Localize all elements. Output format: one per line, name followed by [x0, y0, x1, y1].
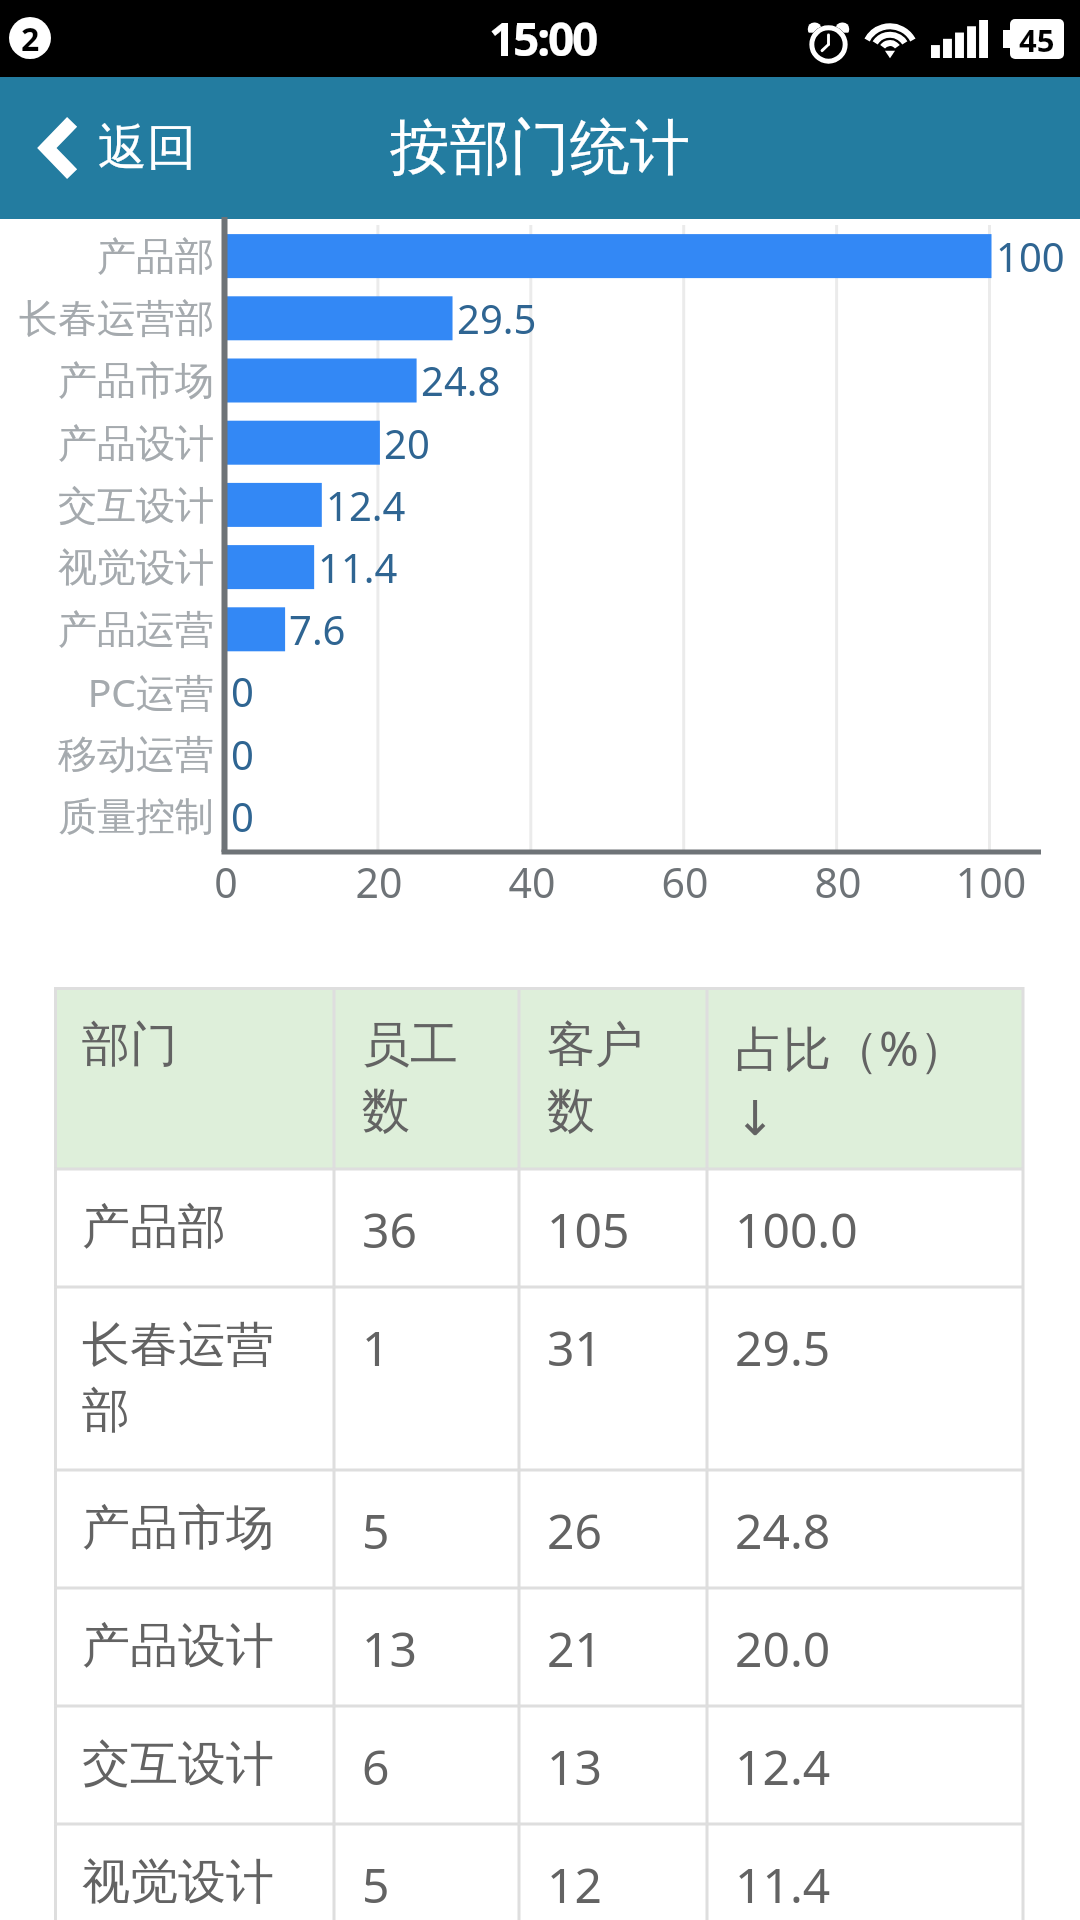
- button[interactable]: 长春运营 部: [54, 1287, 1023, 1470]
- staticText: 质量控制: [0, 792, 214, 841]
- staticText: 产品市场: [0, 356, 214, 405]
- staticText: 15:00: [489, 7, 597, 70]
- staticText: 交互设计: [82, 1734, 274, 1794]
- staticText: 长春运营 部: [82, 1315, 274, 1441]
- staticText: 1: [362, 1315, 390, 1380]
- staticText: 36: [362, 1197, 417, 1262]
- staticText: 11.4: [318, 540, 398, 594]
- button[interactable]: 交互设计: [54, 1706, 1023, 1824]
- staticText: 视觉设计: [0, 543, 214, 592]
- staticText: 45: [1019, 19, 1055, 59]
- button[interactable]: 部门: [54, 987, 334, 1169]
- button[interactable]: 产品部: [54, 1169, 1023, 1287]
- staticText: 产品运营: [0, 605, 214, 654]
- staticText: 5: [362, 1852, 390, 1917]
- staticText: 24.8: [735, 1498, 831, 1563]
- staticText: 0: [231, 664, 254, 718]
- staticText: PC运营: [0, 665, 214, 718]
- staticText: 产品设计: [82, 1616, 274, 1676]
- staticText: 返回: [98, 117, 196, 179]
- staticText: 29.5: [457, 291, 537, 345]
- staticText: 2: [21, 17, 40, 59]
- staticText: 29.5: [735, 1315, 831, 1380]
- staticText: 13: [362, 1616, 417, 1681]
- staticText: 长春运营部: [0, 294, 214, 343]
- staticText: 11.4: [735, 1852, 831, 1917]
- staticText: 移动运营: [0, 730, 214, 779]
- staticText: 100: [941, 854, 1041, 910]
- staticText: 产品市场: [82, 1498, 274, 1558]
- staticText: 视觉设计: [82, 1852, 274, 1912]
- staticText: 12.4: [326, 478, 406, 532]
- staticText: 0: [231, 789, 254, 843]
- button[interactable]: 视觉设计: [54, 1824, 1023, 1920]
- staticText: 产品部: [82, 1197, 226, 1257]
- staticText: 60: [635, 854, 735, 910]
- staticText: 占比（%） ↓: [735, 1015, 967, 1146]
- button[interactable]: 占比（%） ↓: [707, 987, 1023, 1169]
- staticText: 7.6: [289, 602, 346, 656]
- staticText: 6: [362, 1734, 390, 1799]
- staticText: 26: [547, 1498, 602, 1563]
- staticText: 13: [547, 1734, 602, 1799]
- staticText: 20: [329, 854, 429, 910]
- staticText: 员工 数: [362, 1015, 458, 1141]
- staticText: 12.4: [735, 1734, 831, 1799]
- staticText: 0: [176, 854, 276, 910]
- staticText: 产品设计: [0, 419, 214, 468]
- button[interactable]: 返回 Back: [0, 99, 220, 197]
- staticText: 产品部: [0, 232, 214, 281]
- staticText: 21: [547, 1616, 602, 1681]
- staticText: 24.8: [421, 353, 501, 407]
- staticText: 按部门统计: [390, 110, 690, 186]
- staticText: 客户 数: [547, 1015, 643, 1141]
- button[interactable]: 员工 数: [334, 987, 519, 1169]
- staticText: 105: [547, 1197, 630, 1262]
- staticText: 0: [231, 727, 254, 781]
- staticText: 20: [384, 416, 430, 470]
- staticText: 100: [996, 229, 1065, 283]
- staticText: 12: [547, 1852, 602, 1917]
- staticText: 部门: [82, 1015, 178, 1075]
- staticText: 80: [788, 854, 888, 910]
- button[interactable]: 产品市场: [54, 1470, 1023, 1588]
- staticText: 100.0: [735, 1197, 858, 1262]
- staticText: 交互设计: [0, 481, 214, 530]
- button[interactable]: 客户 数: [519, 987, 707, 1169]
- staticText: 31: [547, 1315, 602, 1380]
- staticText: 5: [362, 1498, 390, 1563]
- staticText: 40: [482, 854, 582, 910]
- staticText: 20.0: [735, 1616, 831, 1681]
- button[interactable]: 产品设计: [54, 1588, 1023, 1706]
